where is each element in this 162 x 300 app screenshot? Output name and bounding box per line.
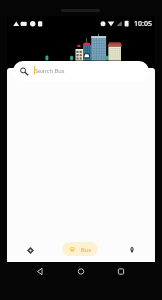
- button[interactable]: Places: [123, 238, 141, 262]
- button[interactable]: Back: [27, 262, 45, 280]
- staticText: Search Bus: [35, 67, 65, 75]
- button[interactable]: Bus: [62, 242, 98, 256]
- button[interactable]: Recent apps: [117, 262, 135, 280]
- staticText: Bus: [81, 246, 91, 254]
- button[interactable]: Home: [72, 262, 90, 280]
- staticText: 10:05: [134, 19, 152, 29]
- button[interactable]: Search Bus: [13, 61, 149, 81]
- button[interactable]: Explore: [21, 238, 39, 262]
